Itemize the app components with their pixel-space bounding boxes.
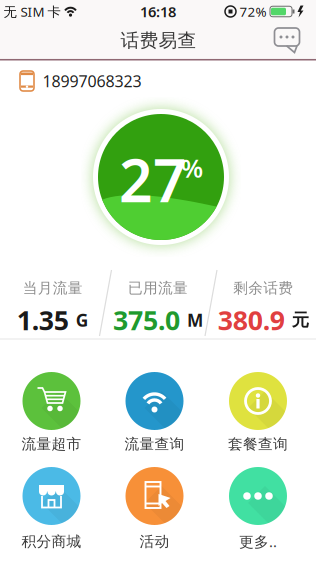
- staticText: 380.9: [218, 302, 285, 338]
- staticText: 套餐查询: [228, 435, 288, 453]
- staticText: 375.0: [113, 302, 180, 338]
- staticText: 已用流量: [128, 279, 188, 297]
- staticText: 剩余话费: [233, 279, 293, 297]
- staticText: 积分商城: [21, 532, 81, 550]
- staticText: 1.35: [17, 302, 69, 338]
- staticText: 18997068323: [42, 70, 141, 92]
- button[interactable]: 套餐查询: [225, 368, 291, 456]
- staticText: 元: [292, 309, 309, 331]
- staticText: G: [76, 308, 89, 331]
- staticText: %: [181, 151, 203, 185]
- staticText: 当月流量: [23, 279, 83, 297]
- button[interactable]: 流量查询: [121, 368, 187, 456]
- staticText: 流量超市: [21, 435, 81, 453]
- staticText: 活动: [139, 532, 169, 550]
- staticText: 16:18: [140, 2, 176, 21]
- staticText: 流量查询: [124, 435, 184, 453]
- staticText: 无 SIM 卡: [3, 3, 60, 20]
- staticText: 27: [119, 140, 187, 218]
- staticText: M: [187, 308, 203, 331]
- staticText: 更多..: [239, 532, 277, 551]
- button[interactable]: Messages: [269, 23, 305, 57]
- button[interactable]: 更多..: [225, 463, 291, 553]
- staticText: 话费易查: [120, 29, 196, 52]
- button[interactable]: 流量超市: [18, 368, 84, 456]
- button[interactable]: 活动: [121, 463, 187, 553]
- staticText: 72%: [239, 3, 266, 20]
- button[interactable]: 积分商城: [18, 463, 84, 553]
